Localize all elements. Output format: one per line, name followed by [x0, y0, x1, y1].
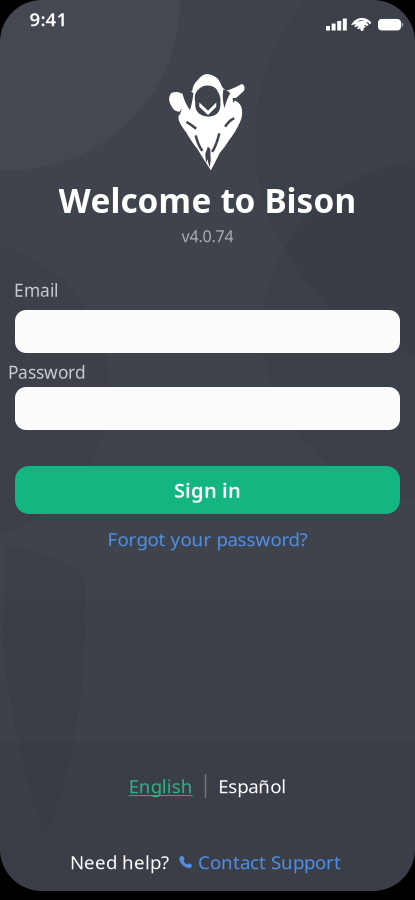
button[interactable]: Español	[218, 774, 286, 798]
staticText: English	[129, 774, 193, 798]
staticText: Sign in	[174, 477, 241, 503]
staticText: Español	[218, 774, 286, 798]
button[interactable]	[15, 310, 400, 353]
button[interactable]: English	[129, 774, 193, 798]
staticText: Need help?	[70, 850, 169, 874]
button[interactable]: Contact Support	[176, 850, 341, 874]
staticText: Welcome to Bison	[58, 178, 356, 222]
staticText: 9:41	[29, 7, 67, 31]
staticText: v4.0.74	[181, 225, 233, 247]
button[interactable]: Forgot your password?	[107, 527, 307, 551]
staticText: Password	[8, 360, 86, 383]
staticText: Contact Support	[198, 850, 341, 874]
button[interactable]: Sign in	[15, 466, 400, 514]
staticText: Email	[14, 278, 58, 301]
staticText: Forgot your password?	[107, 527, 307, 551]
button[interactable]	[15, 387, 400, 430]
